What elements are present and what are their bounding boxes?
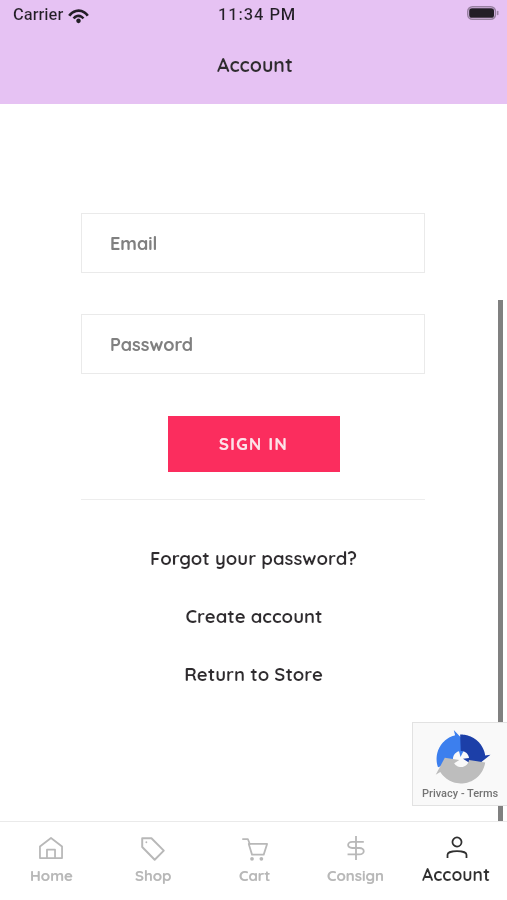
button[interactable]: Cart <box>204 821 305 900</box>
button[interactable]: SIGN IN <box>168 416 340 472</box>
button[interactable]: Shop <box>102 821 204 900</box>
staticText: Email <box>110 232 158 255</box>
staticText: SIGN IN <box>219 433 289 454</box>
staticText: Home <box>30 866 73 885</box>
staticText: Shop <box>135 866 172 885</box>
staticText: Account <box>217 52 293 76</box>
staticText: Password <box>110 333 194 356</box>
staticText: Cart <box>239 866 271 885</box>
button[interactable]: Return to Store <box>184 662 323 685</box>
button[interactable]: Account <box>406 821 507 900</box>
button[interactable]: Consign <box>305 821 406 900</box>
button[interactable]: Email <box>81 213 425 273</box>
button[interactable]: Home <box>0 821 102 900</box>
staticText: Carrier <box>13 5 64 24</box>
staticText: Account <box>422 863 491 885</box>
button[interactable]: Forgot your password? <box>150 546 357 569</box>
staticText: 11:34 PM <box>218 5 297 24</box>
button[interactable]: Password <box>81 314 425 374</box>
button[interactable]: Create account <box>185 604 323 627</box>
staticText: Consign <box>327 866 384 885</box>
staticText: Privacy - Terms <box>422 787 499 800</box>
